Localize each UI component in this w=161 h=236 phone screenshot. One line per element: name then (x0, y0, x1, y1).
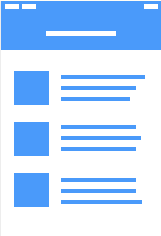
button[interactable] (9, 116, 154, 162)
button[interactable] (9, 167, 154, 213)
button[interactable] (9, 65, 154, 111)
